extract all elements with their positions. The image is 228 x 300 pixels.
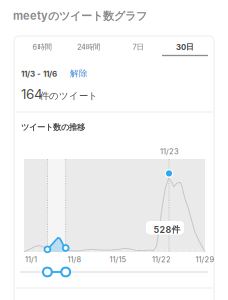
staticText: 件のツイート (40, 90, 98, 102)
staticText: meetyのツイート数グラフ (13, 9, 147, 23)
staticText: 30日 (176, 42, 194, 52)
staticText: ツイート数の推移 (21, 122, 85, 132)
staticText: 解除 (70, 68, 88, 79)
button[interactable]: 7日 (115, 37, 161, 57)
staticText: 11/1 (25, 255, 37, 264)
staticText: 7日 (132, 42, 143, 52)
staticText: 11/29 (195, 255, 214, 264)
staticText: 11/3 - 11/6 (21, 69, 57, 79)
button[interactable]: Range end (0, 0, 228, 300)
staticText: 6時間 (32, 42, 51, 52)
staticText: 11/22 (152, 255, 171, 264)
button[interactable]: 24時間 (65, 37, 111, 57)
button[interactable]: Range start (0, 0, 228, 300)
staticText: 24時間 (77, 42, 100, 52)
staticText: 164 (21, 86, 43, 102)
staticText: 11/15 (109, 255, 126, 264)
staticText: 528件 (153, 224, 180, 235)
button[interactable]: 30日 (162, 37, 208, 57)
button[interactable]: 解除 (70, 68, 88, 79)
staticText: 11/8 (67, 255, 81, 264)
staticText: 11/23 (160, 147, 179, 156)
button[interactable]: 6時間 (19, 37, 65, 57)
